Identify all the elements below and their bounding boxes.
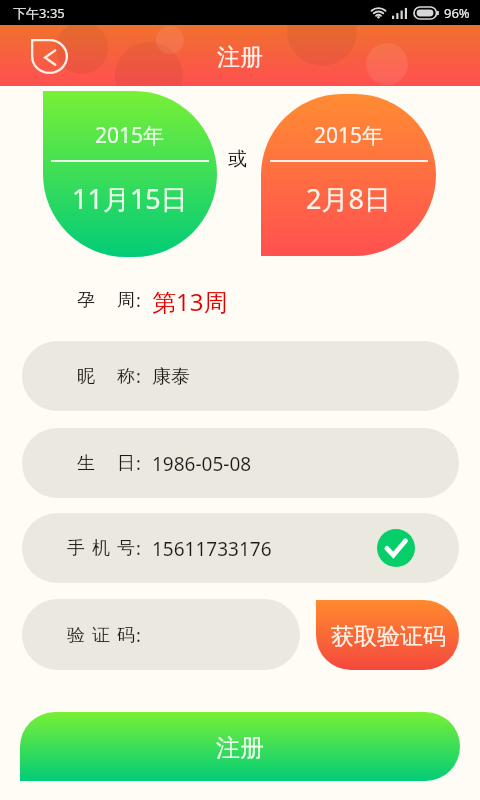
staticText: : [136, 623, 141, 648]
button[interactable]: 获取验证码 [316, 600, 459, 670]
staticText: 11月15日 [72, 180, 188, 217]
staticText: 注册 [217, 43, 263, 72]
button[interactable]: Back [31, 39, 68, 74]
staticText: 获取验证码 [331, 622, 446, 651]
staticText: 机 [92, 537, 110, 560]
staticText: 称 [117, 365, 135, 388]
button[interactable]: 2015年 [43, 91, 217, 257]
staticText: 2015年 [314, 121, 384, 150]
staticText: 或 [228, 147, 247, 171]
staticText: 手 [67, 537, 85, 560]
staticText: 1986-05-08 [152, 451, 252, 477]
staticText: 2015年 [95, 121, 165, 150]
button[interactable]: 注册 [20, 712, 460, 781]
staticText: 日 [117, 452, 135, 475]
button[interactable]: 昵 [22, 341, 459, 411]
staticText: 码 [117, 624, 135, 647]
button[interactable]: 生 [22, 428, 459, 498]
staticText: 第13周 [152, 285, 228, 318]
staticText: 下午3:35 [13, 4, 65, 22]
staticText: 孕 [77, 289, 95, 312]
staticText: 生 [77, 452, 95, 475]
staticText: 证 [92, 624, 110, 647]
staticText: 15611733176 [152, 536, 272, 562]
button[interactable]: 2015年 [261, 94, 436, 256]
staticText: : [136, 536, 141, 561]
staticText: : [136, 364, 141, 389]
staticText: 周 [117, 289, 135, 312]
staticText: : [136, 451, 141, 476]
staticText: 验 [67, 624, 85, 647]
staticText: 康泰 [152, 365, 190, 389]
staticText: 号 [117, 537, 135, 560]
button[interactable]: 验 [22, 599, 300, 670]
staticText: 昵 [77, 365, 95, 388]
staticText: 注册 [216, 733, 264, 763]
staticText: 96% [444, 4, 470, 22]
button[interactable]: 手 [22, 513, 459, 583]
staticText: : [136, 288, 141, 313]
staticText: 2月8日 [306, 180, 391, 217]
